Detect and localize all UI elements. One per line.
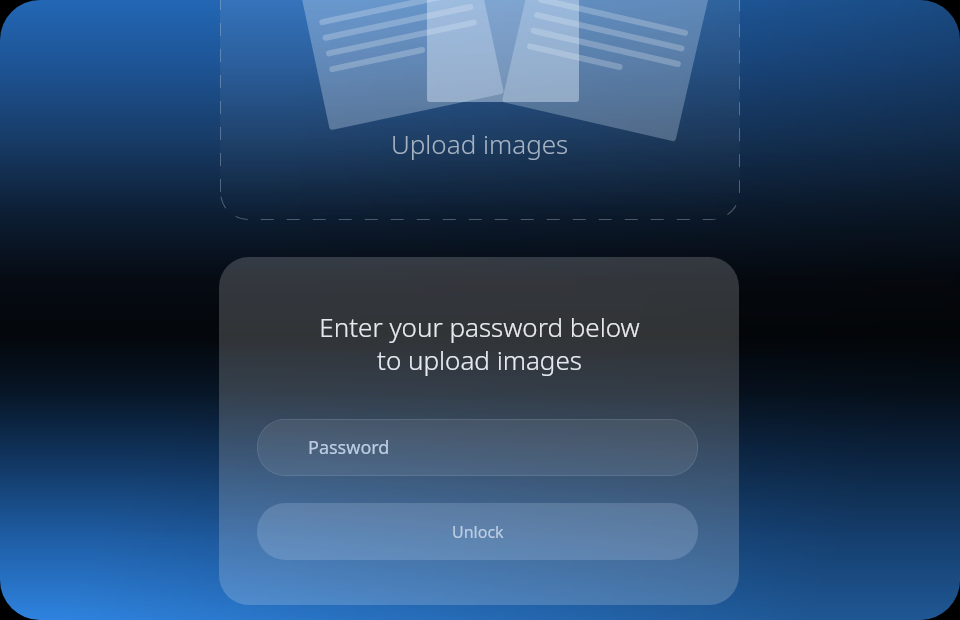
staticText: Upload images bbox=[391, 126, 569, 161]
button[interactable]: Unlock bbox=[257, 503, 698, 560]
staticText: Enter your password below to upload imag… bbox=[319, 309, 640, 378]
staticText: Password bbox=[308, 435, 390, 460]
staticText: Unlock bbox=[452, 521, 504, 543]
button[interactable]: Upload images bbox=[220, 0, 740, 220]
button[interactable]: Password bbox=[257, 419, 698, 476]
